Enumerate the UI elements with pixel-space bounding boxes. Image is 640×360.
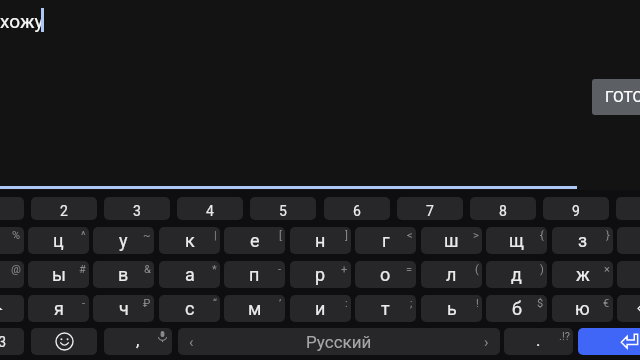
button[interactable]: 6	[324, 197, 390, 220]
staticText: 9	[572, 203, 580, 219]
staticText: }	[606, 229, 610, 242]
staticText: <	[407, 229, 413, 242]
button[interactable]: 9	[543, 197, 609, 220]
staticText: с	[185, 298, 195, 319]
staticText: и	[315, 298, 326, 319]
button[interactable]: Enter	[578, 328, 640, 355]
button[interactable]: 3	[104, 197, 170, 220]
button[interactable]: б	[486, 295, 547, 322]
staticText: &	[144, 263, 151, 276]
staticText: 7	[426, 203, 434, 219]
button[interactable]: и	[290, 295, 351, 322]
button[interactable]: 2	[31, 197, 97, 220]
staticText: *	[212, 263, 217, 276]
button[interactable]: п	[224, 261, 285, 288]
staticText: $	[537, 297, 544, 310]
button[interactable]: с	[159, 295, 220, 322]
staticText: ₽	[143, 297, 151, 310]
staticText: #	[79, 263, 86, 276]
button[interactable]: 1	[0, 197, 24, 220]
button[interactable]: Symbols	[0, 328, 24, 355]
staticText: ц	[53, 230, 64, 251]
button[interactable]: Comma	[104, 328, 172, 355]
staticText: м	[248, 298, 262, 319]
staticText: 2	[60, 203, 68, 219]
button[interactable]: 4	[177, 197, 243, 220]
staticText: %	[12, 229, 21, 242]
button[interactable]: 5	[250, 197, 316, 220]
staticText: г	[382, 230, 390, 251]
button[interactable]: л	[421, 261, 482, 288]
staticText: ?123	[0, 334, 7, 350]
staticText: ш	[444, 230, 459, 251]
button[interactable]: ц	[28, 227, 89, 254]
staticText: 4	[206, 203, 214, 219]
staticText: -	[82, 297, 86, 310]
button[interactable]: д	[486, 261, 547, 288]
button[interactable]: з	[552, 227, 613, 254]
staticText: |	[214, 229, 217, 242]
button[interactable]: е	[224, 227, 285, 254]
staticText: я	[54, 298, 64, 319]
staticText: б	[512, 298, 522, 319]
staticText: .!?	[559, 330, 570, 343]
button[interactable]: м	[224, 295, 285, 322]
staticText: )	[540, 263, 544, 276]
button[interactable]: в	[93, 261, 154, 288]
button[interactable]: т	[355, 295, 416, 322]
staticText: е	[250, 230, 260, 251]
button[interactable]: р	[290, 261, 351, 288]
staticText: н	[315, 230, 326, 251]
button[interactable]: э	[617, 261, 640, 288]
button[interactable]: 8	[470, 197, 536, 220]
staticText: @	[11, 263, 21, 276]
button[interactable]: к	[159, 227, 220, 254]
staticText: .	[536, 330, 541, 350]
button[interactable]: ж	[552, 261, 613, 288]
staticText: щ	[509, 230, 524, 251]
staticText: =	[406, 263, 413, 276]
button[interactable]: й	[0, 227, 24, 254]
button[interactable]: 7	[397, 197, 463, 220]
button[interactable]: 0	[616, 197, 640, 220]
button[interactable]: ь	[421, 295, 482, 322]
staticText: !	[476, 297, 479, 310]
staticText: :	[345, 297, 348, 310]
button[interactable]: Space	[178, 328, 500, 355]
button[interactable]: ю	[552, 295, 613, 322]
staticText: ж	[576, 264, 590, 285]
staticText: ь	[447, 298, 457, 319]
button[interactable]: щ	[486, 227, 547, 254]
button[interactable]: х	[617, 227, 640, 254]
button[interactable]: у	[93, 227, 154, 254]
staticText: ‹	[189, 333, 194, 351]
staticText: а	[185, 264, 195, 285]
button[interactable]: г	[355, 227, 416, 254]
staticText: о	[380, 264, 391, 285]
button[interactable]: я	[28, 295, 89, 322]
staticText: з	[578, 230, 588, 251]
staticText: €	[603, 297, 610, 310]
button[interactable]: ы	[28, 261, 89, 288]
button[interactable]: ГОТОВО	[592, 79, 640, 115]
staticText: ю	[575, 298, 590, 319]
button[interactable]: н	[290, 227, 351, 254]
staticText: п	[249, 264, 260, 285]
staticText: хожу	[0, 10, 44, 32]
staticText: 8	[499, 203, 507, 219]
button[interactable]: Backspace	[617, 295, 640, 322]
button[interactable]: Shift	[0, 295, 24, 322]
staticText: ~	[143, 229, 151, 242]
staticText: >	[473, 229, 479, 242]
button[interactable]: ч	[93, 295, 154, 322]
staticText: л	[446, 264, 457, 285]
button[interactable]: о	[355, 261, 416, 288]
button[interactable]: Emoji	[31, 328, 97, 355]
staticText: ч	[119, 298, 129, 319]
button[interactable]: ш	[421, 227, 482, 254]
button[interactable]: ф	[0, 261, 24, 288]
staticText: к	[185, 230, 195, 251]
button[interactable]: а	[159, 261, 220, 288]
button[interactable]: Period	[504, 328, 573, 355]
